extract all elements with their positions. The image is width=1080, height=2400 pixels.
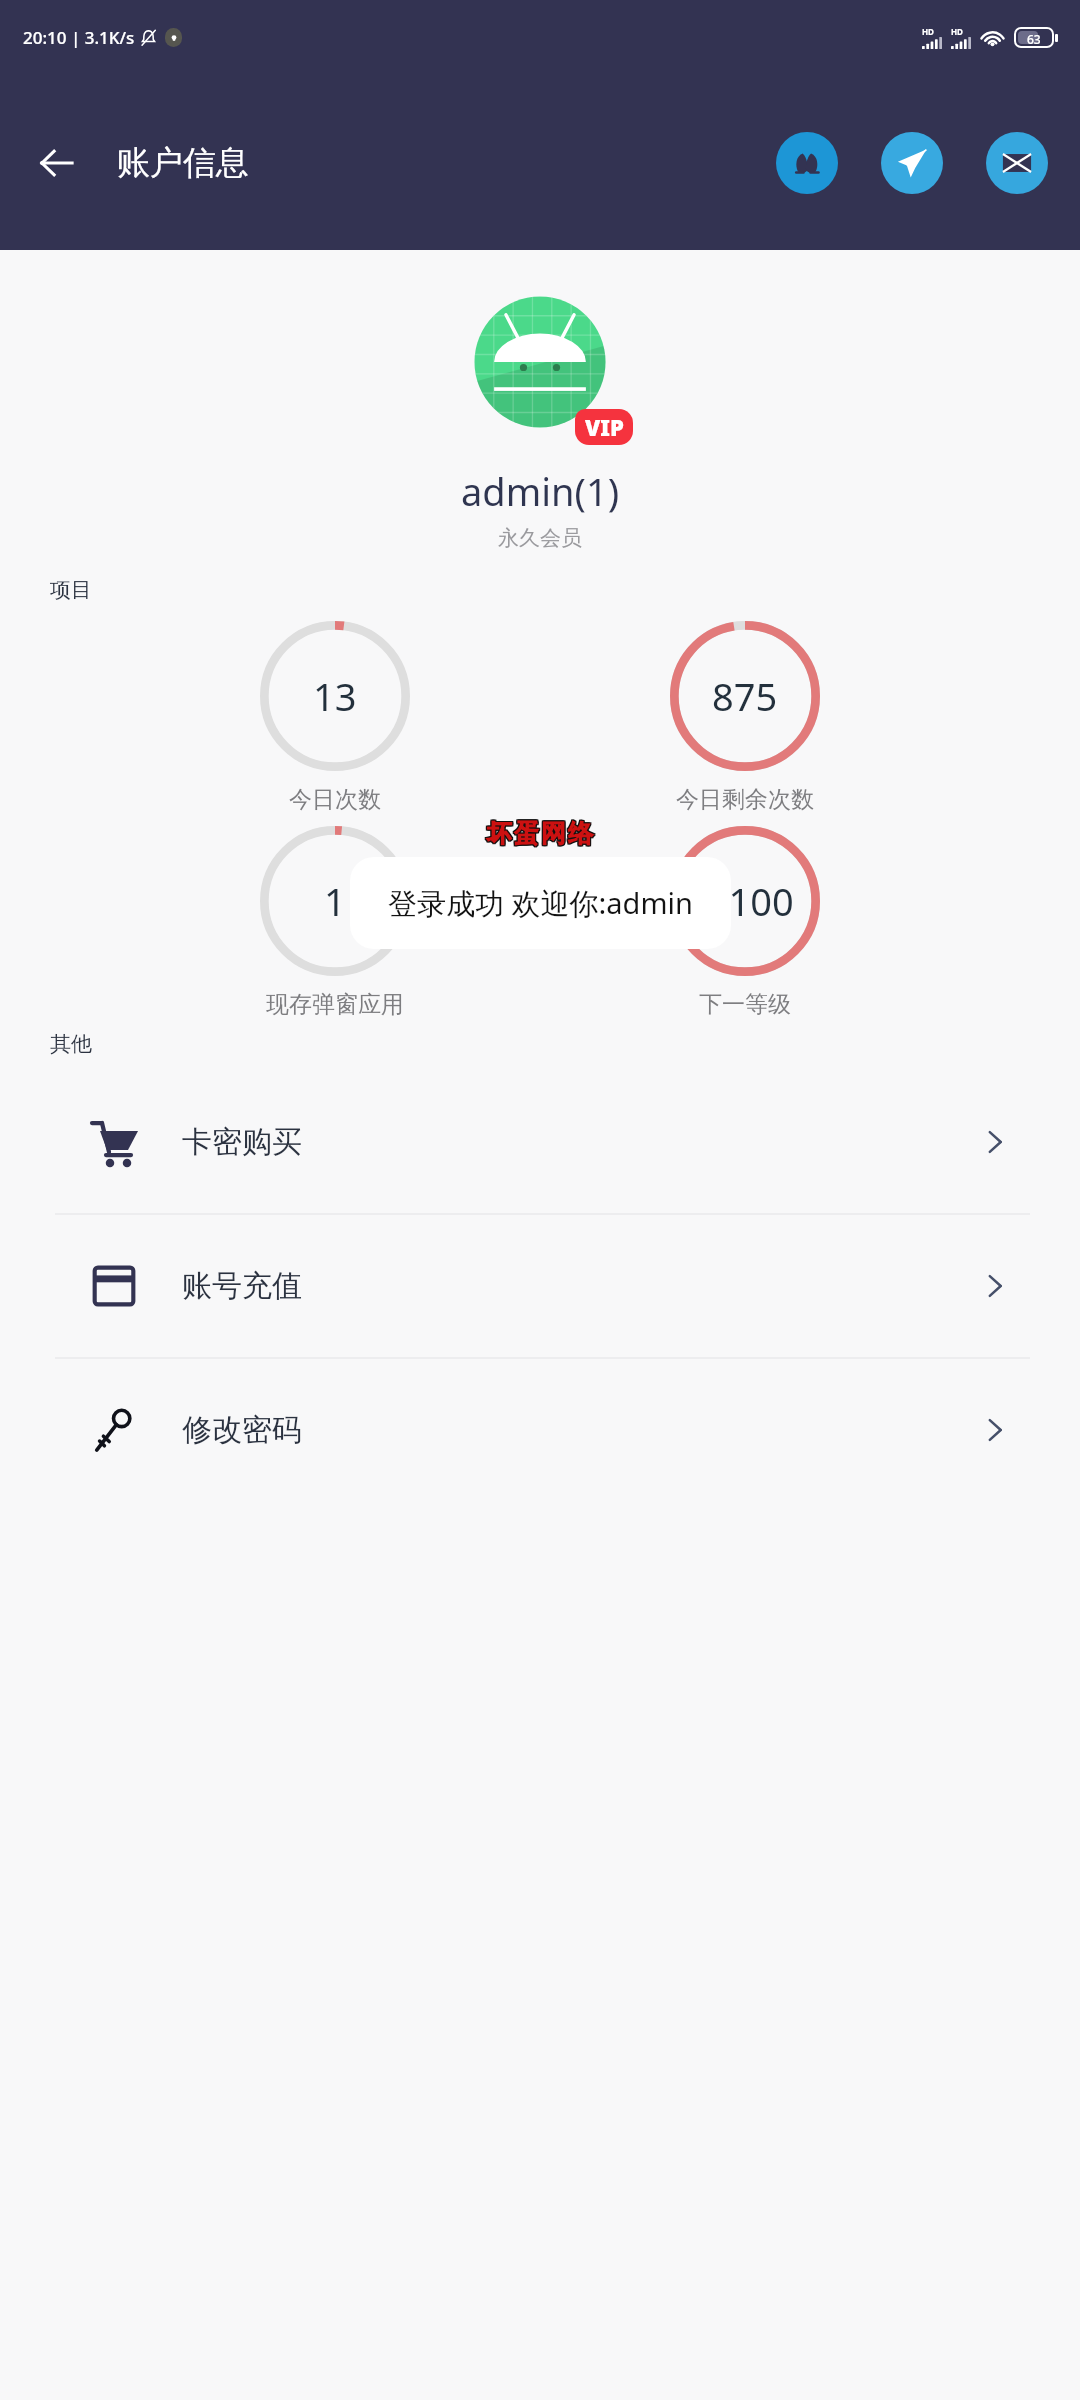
staticText: HD: [922, 26, 934, 37]
button[interactable]: Email: [986, 132, 1048, 194]
staticText: 坏蛋网络: [487, 817, 595, 848]
staticText: 坏蛋网络: [486, 819, 594, 850]
staticText: 永久会员: [498, 525, 582, 551]
staticText: 1: [324, 875, 346, 927]
staticText: admin(1): [461, 465, 620, 517]
staticText: 账户信息: [117, 142, 249, 184]
button[interactable]: 卡密购买: [0, 1071, 1080, 1213]
staticText: 坏蛋网络: [487, 819, 595, 850]
staticText: 坏蛋网络: [486, 818, 594, 849]
staticText: 875: [712, 670, 778, 722]
staticText: 账号充值: [182, 1267, 302, 1305]
staticText: 登录成功 欢迎你:admin: [388, 883, 693, 923]
button[interactable]: Telegram: [881, 132, 943, 194]
staticText: 坏蛋网络: [486, 817, 594, 848]
staticText: 项目: [50, 577, 1080, 603]
staticText: 13: [313, 670, 357, 722]
staticText: 修改密码: [182, 1411, 302, 1449]
staticText: 坏蛋网络: [487, 818, 595, 849]
staticText: 卡密购买: [182, 1123, 302, 1161]
staticText: 今日剩余次数: [676, 785, 814, 814]
staticText: 今日次数: [289, 785, 381, 814]
staticText: 坏蛋网络: [485, 818, 593, 849]
button[interactable]: 修改密码: [0, 1359, 1080, 1501]
staticText: 20:10 | 3.1K/s: [23, 26, 135, 49]
staticText: 坏蛋网络: [485, 819, 593, 850]
staticText: HD: [951, 26, 963, 37]
staticText: 坏蛋网络: [485, 817, 593, 848]
button[interactable]: QQ: [776, 132, 838, 194]
staticText: 现存弹窗应用: [266, 990, 404, 1019]
staticText: 63: [1027, 31, 1041, 44]
staticText: 下一等级: [699, 990, 791, 1019]
button[interactable]: Back: [28, 134, 86, 192]
staticText: VIP: [585, 412, 624, 442]
staticText: %100: [697, 875, 794, 927]
staticText: 其他: [50, 1031, 1080, 1057]
button[interactable]: 账号充值: [0, 1215, 1080, 1357]
